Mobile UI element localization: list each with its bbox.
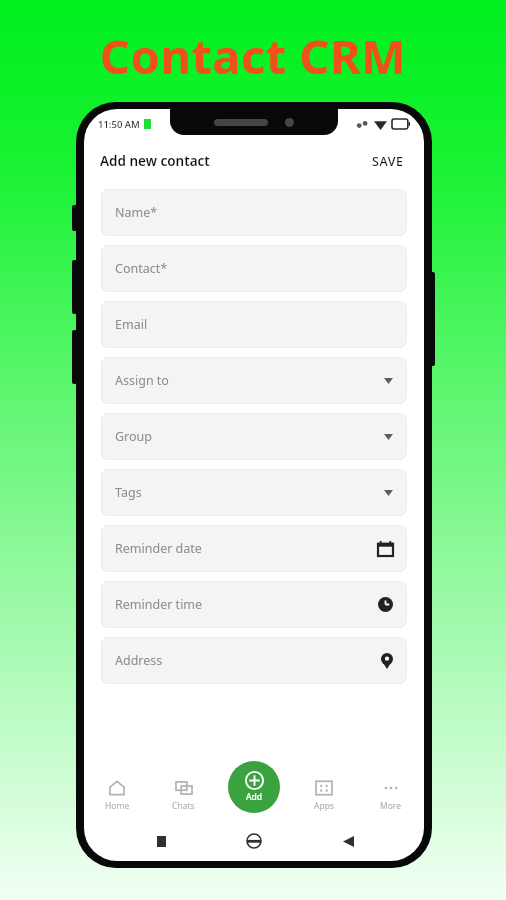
staticText: SAVE xyxy=(372,153,404,170)
button[interactable]: Reminder time xyxy=(101,581,407,628)
button[interactable]: Add xyxy=(228,761,280,813)
button[interactable]: Tags xyxy=(101,469,407,516)
staticText: Chats xyxy=(172,800,195,812)
staticText: Contact CRM xyxy=(0,24,506,88)
staticText: 11:50 AM xyxy=(98,118,140,131)
button[interactable]: Apps xyxy=(290,771,357,821)
button[interactable]: Email xyxy=(101,301,407,348)
button[interactable]: Back xyxy=(331,824,365,858)
button[interactable]: Contact* xyxy=(101,245,407,292)
staticText: Email xyxy=(115,316,148,333)
button[interactable]: Assign to xyxy=(101,357,407,404)
button[interactable]: Address xyxy=(101,637,407,684)
button[interactable]: Add new contact xyxy=(100,139,408,183)
staticText: Reminder time xyxy=(115,596,203,613)
button[interactable]: Name* xyxy=(101,189,407,236)
staticText: Address xyxy=(115,652,163,669)
staticText: Assign to xyxy=(115,372,169,389)
staticText: Add xyxy=(246,791,263,803)
staticText: Tags xyxy=(115,484,142,501)
staticText: Reminder date xyxy=(115,540,202,557)
button[interactable]: Group xyxy=(101,413,407,460)
button[interactable]: Home xyxy=(237,824,271,858)
button[interactable]: More xyxy=(357,771,424,821)
button[interactable]: Chats xyxy=(150,771,217,821)
staticText: More xyxy=(380,800,401,812)
staticText: Home xyxy=(105,800,130,812)
button[interactable]: Home xyxy=(84,771,150,821)
staticText: Contact* xyxy=(115,260,168,277)
staticText: Add new contact xyxy=(100,152,210,170)
button[interactable]: Recents xyxy=(144,824,178,858)
button[interactable]: SAVE xyxy=(368,149,408,174)
button[interactable]: Reminder date xyxy=(101,525,407,572)
staticText: Group xyxy=(115,428,152,445)
staticText: Name* xyxy=(115,204,158,221)
staticText: Apps xyxy=(314,800,334,812)
